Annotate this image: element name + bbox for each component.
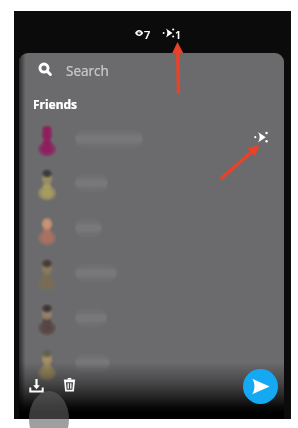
button[interactable]: Snaps sent	[164, 26, 182, 40]
staticText: Search	[66, 62, 109, 77]
button[interactable]: Search	[19, 62, 284, 77]
button[interactable]: Save	[28, 377, 45, 394]
button[interactable]: Send	[243, 369, 278, 404]
button[interactable]	[19, 160, 284, 205]
button[interactable]	[19, 205, 284, 250]
staticText: 1	[175, 27, 182, 41]
button[interactable]	[19, 295, 284, 340]
button[interactable]: Delete	[62, 377, 77, 392]
button[interactable]: Sent	[256, 129, 272, 145]
button[interactable]	[19, 340, 284, 385]
button[interactable]: 7	[135, 26, 151, 40]
button[interactable]	[19, 116, 284, 161]
staticText: 7	[144, 27, 151, 41]
button[interactable]	[19, 250, 284, 295]
staticText: Friends	[33, 96, 78, 112]
